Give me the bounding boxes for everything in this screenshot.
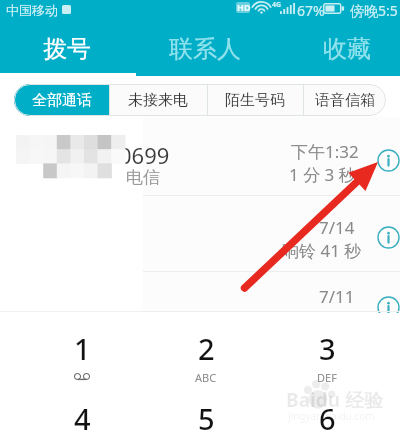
button[interactable]: 联系人 — [150, 25, 260, 73]
button[interactable]: 4 — [32, 383, 132, 432]
staticText: jingyan.baidu.com — [288, 409, 375, 423]
staticText: 语音信箱 — [315, 91, 375, 110]
staticText: 联系人 — [169, 34, 241, 64]
staticText: Baidu 经验 — [286, 387, 383, 413]
staticText: 4 — [74, 399, 91, 432]
staticText: 3 — [319, 329, 336, 368]
button[interactable]: 7/14 — [0, 196, 400, 271]
button[interactable]: 全部通话 — [14, 84, 109, 116]
staticText: 下午1:32 — [291, 140, 359, 163]
button[interactable]: 通话详情 — [377, 149, 400, 172]
staticText: 中国移动 — [6, 2, 58, 18]
staticText: DEF — [317, 370, 337, 385]
staticText: 6 — [319, 399, 336, 432]
button[interactable]: 通话详情 — [377, 226, 400, 249]
button[interactable]: 0699 — [0, 117, 400, 195]
staticText: 傍晚5:5 — [350, 1, 398, 20]
button[interactable]: 陌生号码 — [207, 84, 303, 116]
button[interactable]: 收藏 — [292, 25, 400, 73]
button[interactable]: 通话详情 — [377, 296, 400, 319]
button[interactable]: 6 — [277, 383, 377, 432]
staticText: 1 — [74, 329, 91, 368]
button[interactable]: 7/11 — [0, 272, 400, 312]
staticText: 拨号 — [43, 34, 91, 64]
staticText: ABC — [195, 370, 217, 385]
staticText: HD — [237, 1, 251, 13]
button[interactable]: 2 — [156, 313, 256, 381]
staticText: 7/11 — [319, 285, 355, 308]
button[interactable]: 1 — [32, 313, 132, 381]
staticText: 2 — [198, 329, 215, 368]
staticText: 全部通话 — [32, 91, 92, 110]
button[interactable]: 拨号 — [12, 25, 122, 73]
button[interactable]: 未接来电 — [109, 84, 207, 116]
staticText: 未接来电 — [128, 91, 188, 110]
staticText: 67% — [297, 1, 325, 20]
staticText: 5 — [198, 399, 215, 432]
button[interactable]: 语音信箱 — [303, 84, 386, 116]
staticText: 陌生号码 — [225, 91, 285, 110]
button[interactable]: 5 — [156, 383, 256, 432]
staticText: 收藏 — [323, 34, 371, 64]
staticText: 1 分 3 秒 — [289, 163, 356, 186]
staticText: 响铃 41 秒 — [282, 239, 362, 262]
staticText: 7/14 — [319, 216, 355, 239]
staticText: 0699 — [119, 140, 170, 170]
staticText: 电信 — [126, 167, 160, 188]
staticText: 4G — [272, 0, 282, 10]
button[interactable]: 3 — [277, 313, 377, 381]
